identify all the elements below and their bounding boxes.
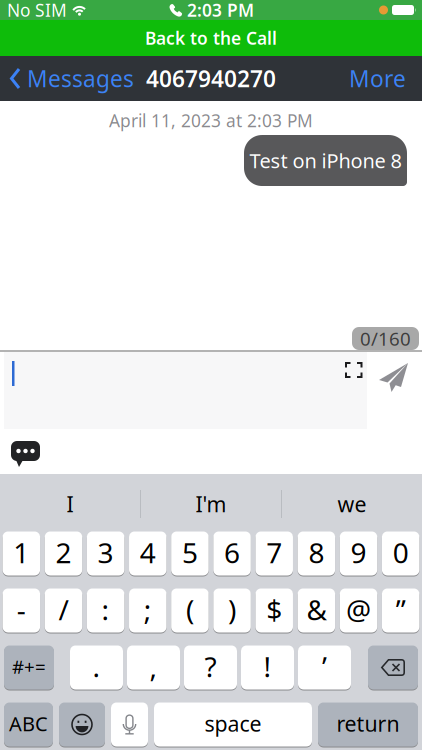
- staticText: More: [349, 63, 406, 93]
- button[interactable]: ;: [129, 588, 166, 632]
- button[interactable]: return: [318, 702, 418, 746]
- staticText: ): [228, 591, 236, 628]
- staticText: /: [58, 591, 68, 628]
- staticText: 4: [140, 534, 156, 571]
- button[interactable]: Delete: [368, 645, 418, 689]
- button[interactable]: More: [349, 63, 422, 93]
- button[interactable]: 9: [340, 531, 377, 575]
- button[interactable]: Back to the Call: [0, 20, 422, 56]
- staticText: (: [186, 591, 194, 628]
- button[interactable]: 1: [3, 531, 40, 575]
- button[interactable]: ABC: [4, 702, 53, 746]
- button[interactable]: 3: [87, 531, 124, 575]
- button[interactable]: 4: [129, 531, 166, 575]
- button[interactable]: -: [3, 588, 40, 632]
- staticText: space: [204, 709, 261, 738]
- staticText: Back to the Call: [145, 26, 277, 49]
- button[interactable]: .: [70, 645, 123, 689]
- staticText: I: [66, 490, 73, 518]
- staticText: 9: [350, 534, 366, 571]
- staticText: ,: [149, 648, 157, 685]
- button[interactable]: (: [171, 588, 209, 632]
- staticText: 1: [13, 534, 29, 571]
- button[interactable]: &: [298, 588, 335, 632]
- staticText: No SIM: [7, 0, 67, 21]
- staticText: ;: [144, 591, 152, 628]
- staticText: 6: [224, 534, 240, 571]
- staticText: ”: [396, 591, 406, 628]
- staticText: @: [346, 591, 371, 628]
- button[interactable]: !: [241, 645, 294, 689]
- button[interactable]: 2: [45, 531, 82, 575]
- staticText: 5: [182, 534, 198, 571]
- staticText: 2:03 PM: [187, 0, 254, 21]
- button[interactable]: Dictate: [111, 702, 148, 746]
- button[interactable]: ?: [184, 645, 237, 689]
- staticText: 0: [393, 534, 409, 571]
- button[interactable]: $: [255, 588, 293, 632]
- staticText: 7: [266, 534, 282, 571]
- button[interactable]: 7: [255, 531, 293, 575]
- button[interactable]: 6: [213, 531, 251, 575]
- button[interactable]: I'm: [141, 477, 281, 531]
- button[interactable]: 5: [171, 531, 209, 575]
- staticText: I'm: [195, 490, 226, 518]
- button[interactable]: @: [340, 588, 377, 632]
- button[interactable]: 0: [382, 531, 419, 575]
- button[interactable]: we: [282, 477, 422, 531]
- button[interactable]: ’: [298, 645, 351, 689]
- button[interactable]: ): [213, 588, 251, 632]
- button[interactable]: Messages: [0, 63, 134, 93]
- button[interactable]: ”: [382, 588, 419, 632]
- staticText: #+=: [12, 654, 46, 679]
- staticText: Test on iPhone 8: [249, 147, 401, 174]
- staticText: 2: [55, 534, 71, 571]
- staticText: April 11, 2023 at 2:03 PM: [109, 109, 313, 132]
- staticText: 4067940270: [146, 63, 276, 93]
- button[interactable]: 8: [298, 531, 335, 575]
- staticText: ?: [204, 648, 216, 685]
- staticText: &: [306, 591, 326, 628]
- button[interactable]: space: [154, 702, 312, 746]
- staticText: ’: [322, 648, 327, 685]
- staticText: !: [263, 648, 271, 685]
- button[interactable]: Expand: [346, 352, 367, 377]
- button[interactable]: Send: [379, 363, 422, 392]
- staticText: 8: [308, 534, 324, 571]
- button[interactable]: Emoji: [59, 702, 105, 746]
- button[interactable]: /: [45, 588, 82, 632]
- button[interactable]: Templates: [0, 429, 30, 456]
- button[interactable]: :: [87, 588, 124, 632]
- button[interactable]: #+=: [4, 645, 54, 689]
- staticText: return: [336, 709, 399, 738]
- button[interactable]: I: [0, 477, 140, 531]
- staticText: $: [266, 591, 282, 628]
- staticText: we: [337, 490, 366, 518]
- button[interactable]: ,: [127, 645, 180, 689]
- staticText: :: [102, 591, 110, 628]
- staticText: ABC: [9, 710, 48, 737]
- staticText: Messages: [27, 63, 134, 93]
- staticText: -: [17, 591, 26, 628]
- staticText: 0/160: [360, 326, 411, 351]
- staticText: 3: [98, 534, 114, 571]
- staticText: .: [92, 648, 100, 685]
